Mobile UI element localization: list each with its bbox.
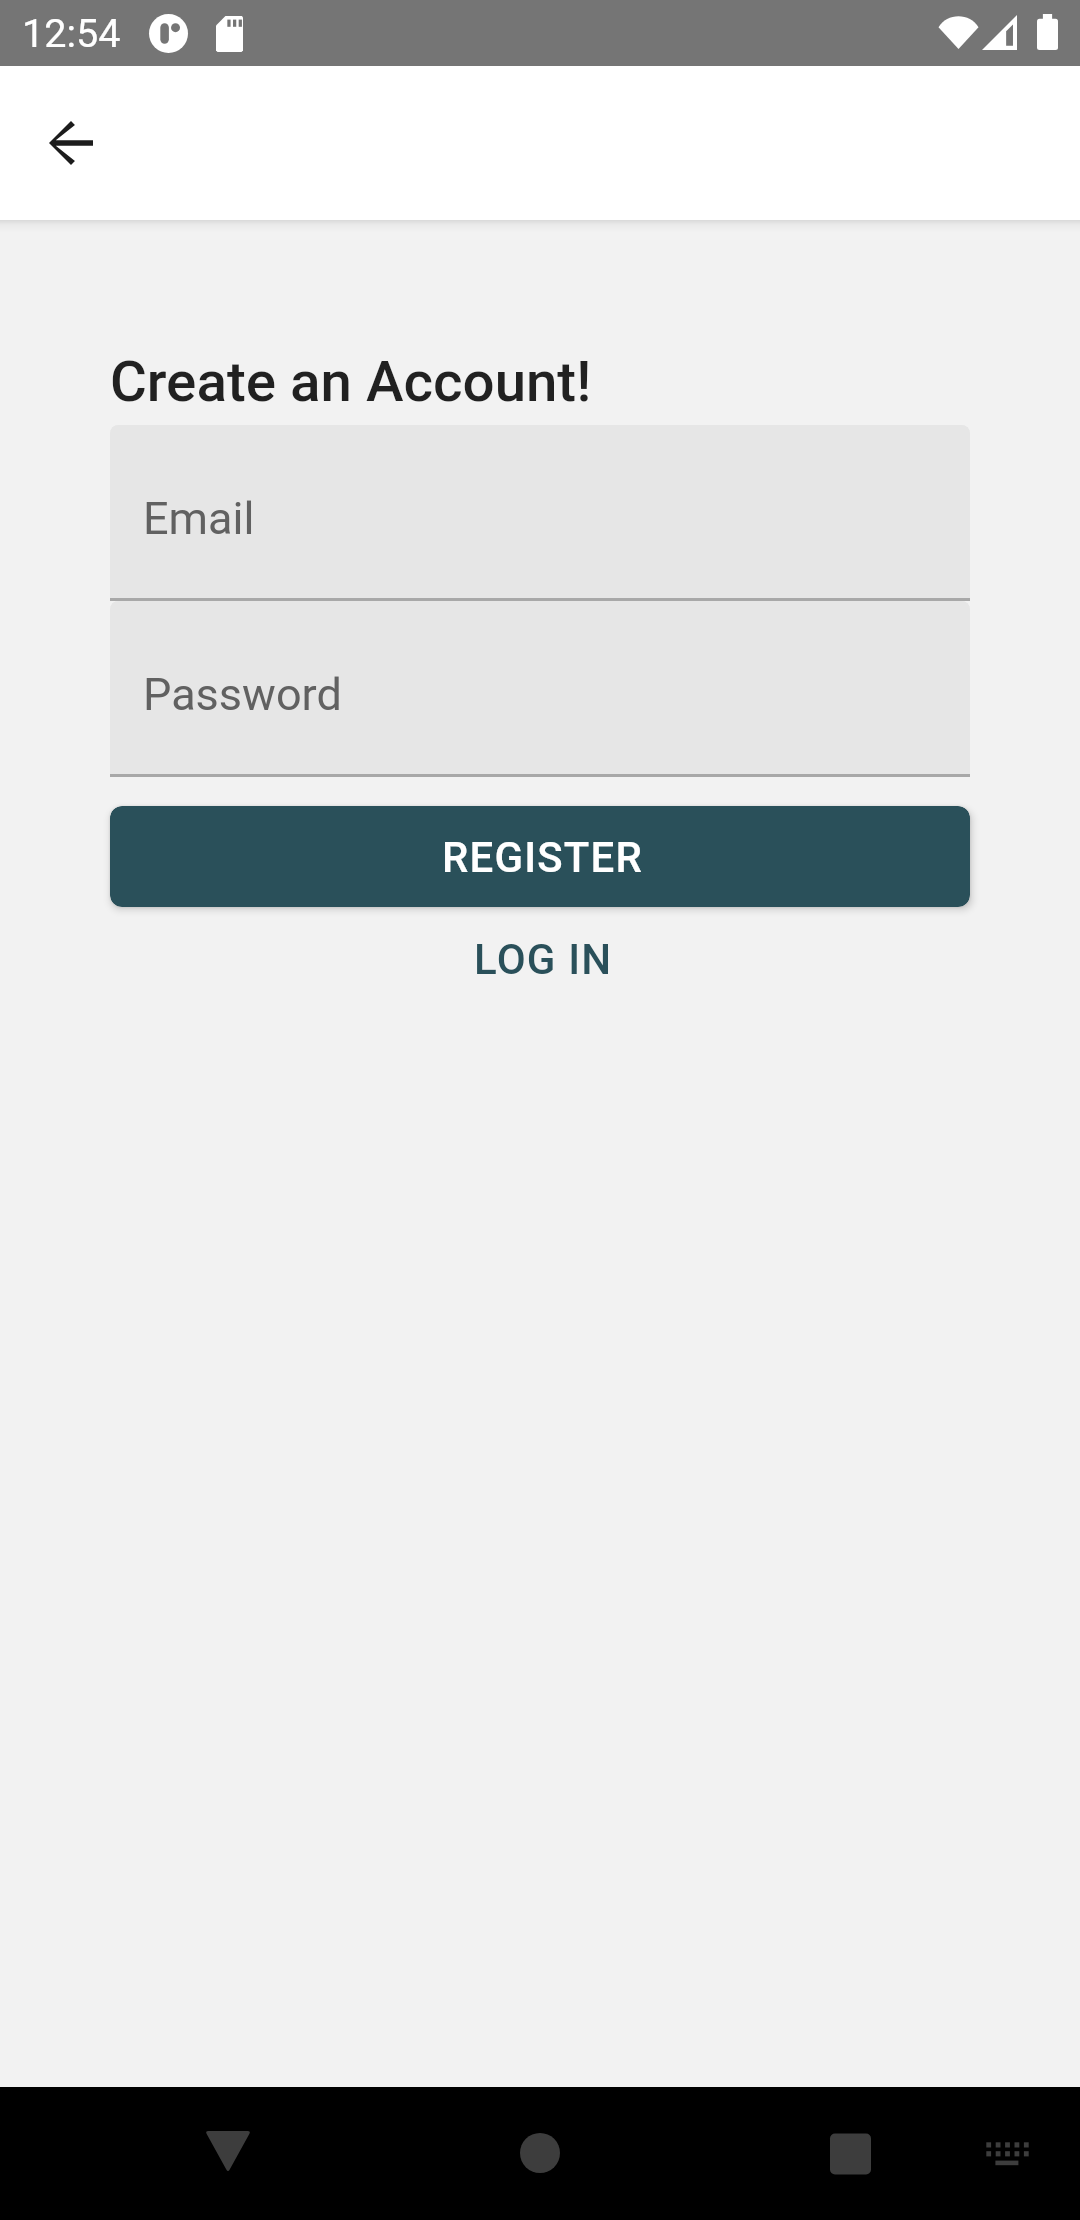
- staticText: REGISTER: [442, 833, 643, 882]
- staticText: Password: [143, 668, 342, 721]
- button[interactable]: Back: [162, 2087, 294, 2219]
- staticText: 12:54: [22, 10, 121, 56]
- button[interactable]: REGISTER: [110, 806, 970, 907]
- staticText: LOG IN: [474, 935, 613, 984]
- staticText: Create an Account!: [110, 349, 592, 415]
- button[interactable]: Home: [474, 2087, 606, 2219]
- button[interactable]: Email: [110, 425, 970, 601]
- staticText: Email: [143, 492, 255, 545]
- button[interactable]: LOG IN: [447, 925, 634, 992]
- button[interactable]: Password: [110, 601, 970, 777]
- button[interactable]: Recent apps: [784, 2087, 916, 2219]
- button[interactable]: Back: [39, 109, 111, 181]
- button[interactable]: Switch keyboard: [941, 2087, 1073, 2219]
